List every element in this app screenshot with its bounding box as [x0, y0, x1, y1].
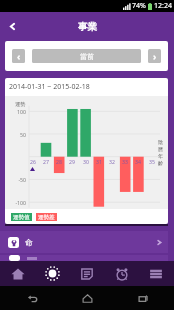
- staticText: 運勢值: [13, 214, 30, 221]
- button[interactable]: Notes: [70, 261, 104, 286]
- staticText: 27: [43, 158, 49, 165]
- staticText: 28: [56, 158, 62, 165]
- staticText: 運勢差: [38, 214, 55, 221]
- staticText: 2014-01-31 ~ 2015-02-18: [9, 82, 90, 92]
- staticText: 74%: [132, 1, 146, 11]
- staticText: 100: [9, 108, 26, 115]
- button[interactable]: Alarm: [105, 261, 139, 286]
- staticText: 33: [122, 158, 128, 165]
- staticText: 事業: [78, 21, 97, 33]
- button[interactable]: Home: [63, 286, 111, 310]
- button[interactable]: Previous: [12, 49, 25, 63]
- button[interactable]: Back: [0, 12, 24, 41]
- staticText: 34: [135, 158, 141, 165]
- staticText: 12:24: [154, 1, 172, 11]
- staticText: 26: [30, 158, 36, 165]
- staticText: 29: [69, 158, 75, 165]
- staticText: 當前: [80, 52, 94, 61]
- button[interactable]: Home: [1, 261, 35, 286]
- button[interactable]: Next: [148, 49, 161, 63]
- staticText: 32: [109, 158, 115, 165]
- staticText: -100: [9, 199, 26, 206]
- staticText: 31: [96, 158, 102, 165]
- button[interactable]: Recents: [119, 286, 167, 310]
- staticText: 命: [25, 238, 33, 247]
- staticText: 陰: [158, 139, 164, 146]
- staticText: ›: [153, 50, 157, 62]
- button[interactable]: 當前: [32, 49, 141, 63]
- button[interactable]: Menu: [139, 261, 173, 286]
- staticText: -50: [9, 176, 26, 183]
- staticText: 30: [83, 158, 89, 165]
- staticText: 50: [9, 131, 26, 138]
- staticText: ‹: [17, 50, 21, 62]
- staticText: 年: [158, 153, 164, 160]
- staticText: 齡: [158, 160, 164, 167]
- button[interactable]: Fortune: [35, 261, 69, 286]
- staticText: 運勢: [15, 101, 26, 108]
- staticText: 曆: [158, 146, 164, 153]
- button[interactable]: 命: [0, 231, 168, 253]
- staticText: 35: [149, 158, 155, 165]
- button[interactable]: Back: [8, 286, 56, 310]
